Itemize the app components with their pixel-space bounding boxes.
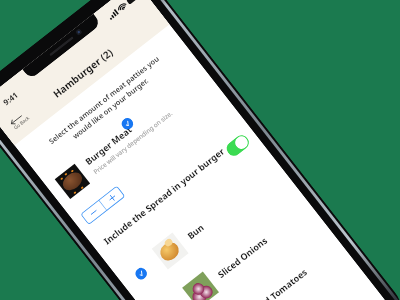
button[interactable]: Decrease quantity <box>80 200 107 225</box>
button[interactable]: Include the spread toggle <box>224 132 252 159</box>
staticText: Select the amount of meat patties you wo… <box>23 35 191 173</box>
staticText: Include the Spread in your burger <box>101 145 227 247</box>
button[interactable]: Sliced Tomatoes <box>176 231 350 300</box>
button[interactable]: Sliced Onions <box>146 193 319 300</box>
staticText: 9:41 <box>1 89 20 107</box>
staticText: Sliced Onions <box>215 234 270 281</box>
staticText: Price will vary depending on size. <box>91 109 174 176</box>
button[interactable]: Go Back <box>5 106 34 134</box>
staticText: Go Back <box>12 114 31 131</box>
button[interactable]: Increase quantity <box>99 185 125 211</box>
staticText: Hamburger (2) <box>1 7 165 139</box>
staticText: Bun <box>185 221 206 242</box>
staticText: Sliced Tomatoes <box>246 266 310 300</box>
button[interactable]: Bun <box>116 154 289 298</box>
staticText: Burger Meat <box>83 123 134 167</box>
